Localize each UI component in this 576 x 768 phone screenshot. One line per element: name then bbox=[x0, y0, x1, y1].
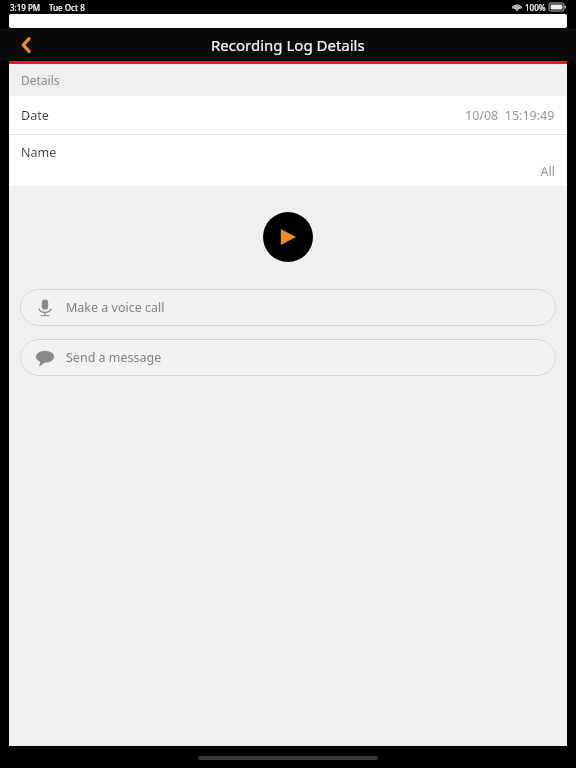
button[interactable]: Date bbox=[9, 96, 567, 134]
button[interactable]: Play recording bbox=[263, 212, 313, 262]
button[interactable]: Name bbox=[9, 135, 567, 186]
staticText: Name bbox=[21, 144, 57, 161]
staticText: All bbox=[21, 163, 555, 180]
button[interactable]: Back bbox=[6, 28, 46, 61]
staticText: Make a voice call bbox=[66, 299, 165, 316]
button[interactable]: Send a message bbox=[20, 339, 556, 376]
staticText: Details bbox=[21, 72, 60, 88]
staticText: Send a message bbox=[66, 349, 162, 366]
staticText: 3:19 PM bbox=[10, 2, 41, 13]
staticText: Recording Log Details bbox=[211, 35, 365, 55]
staticText: Date bbox=[21, 107, 49, 124]
staticText: 10/08 15:19:49 bbox=[465, 107, 555, 124]
button[interactable]: Make a voice call bbox=[20, 289, 556, 326]
staticText: Tue Oct 8 bbox=[49, 2, 85, 13]
staticText: 100% bbox=[525, 2, 546, 13]
